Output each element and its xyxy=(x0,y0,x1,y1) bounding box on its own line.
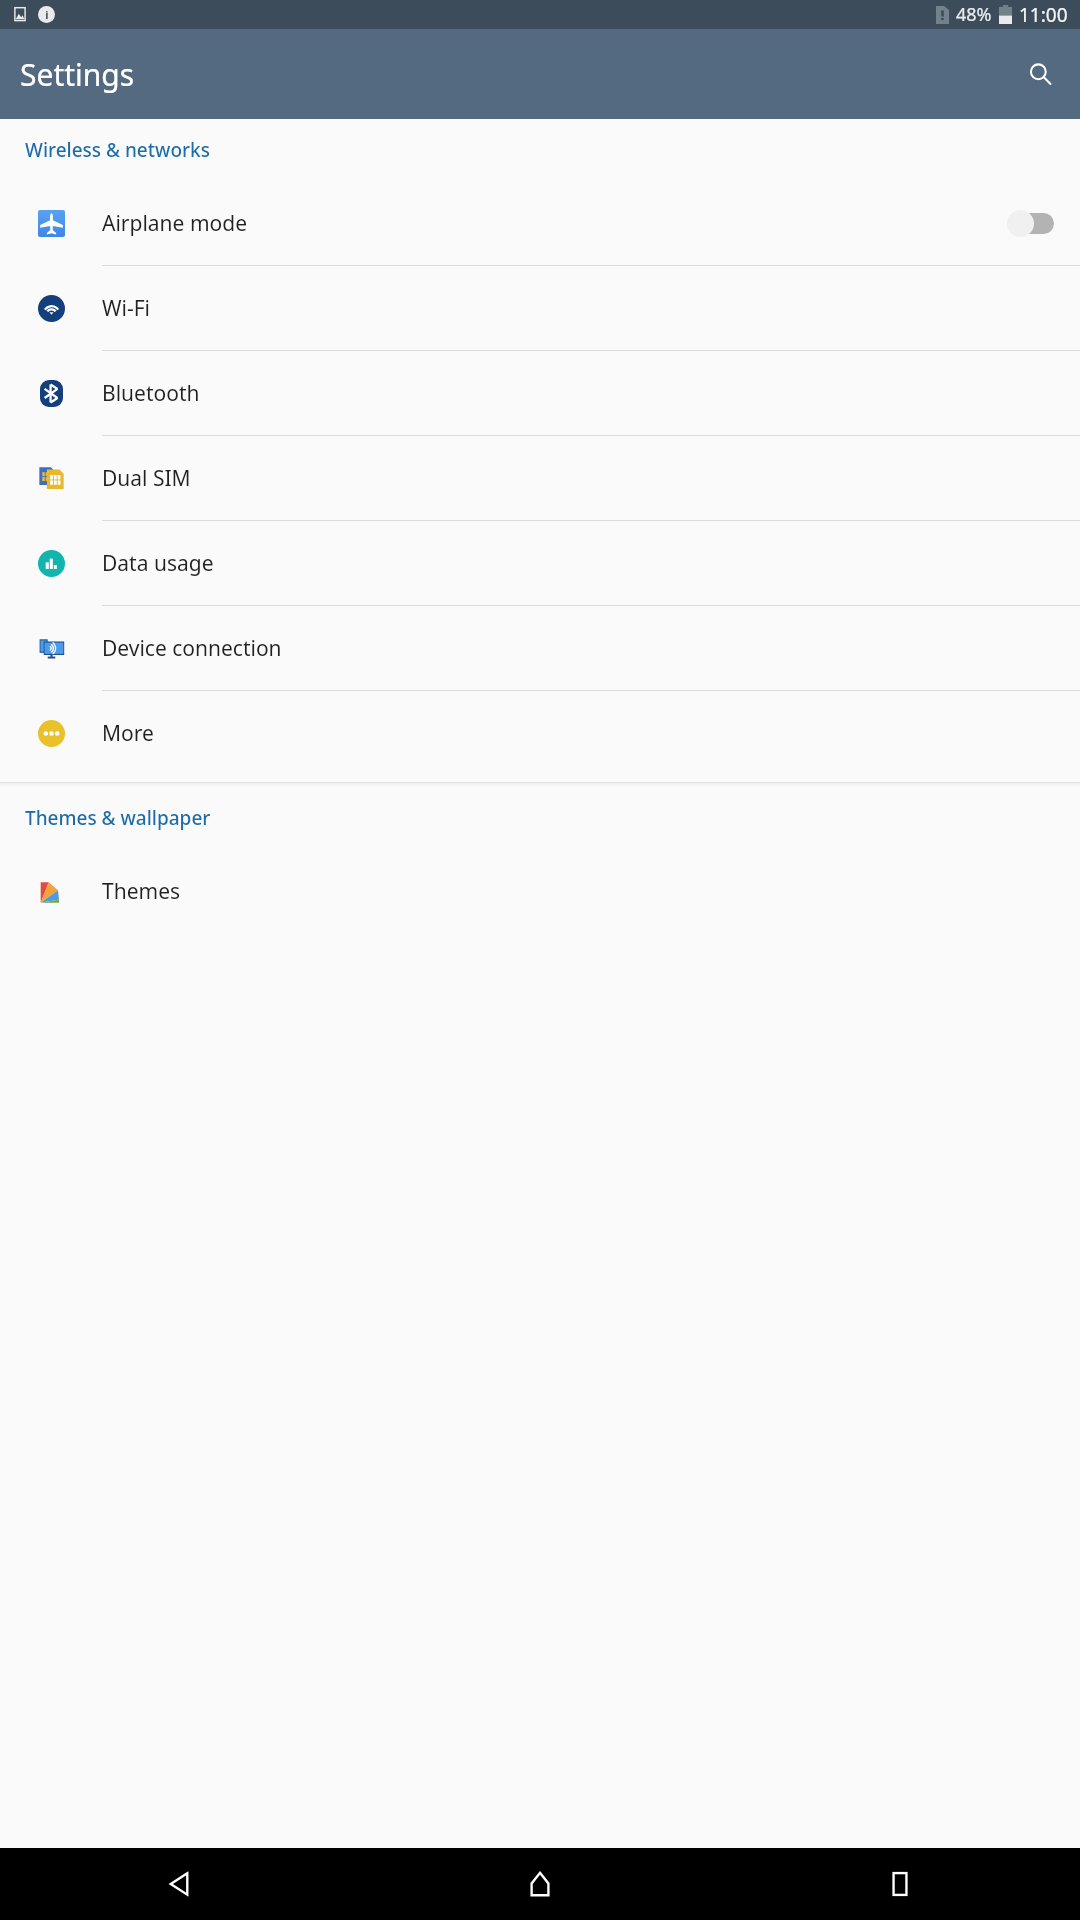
button[interactable]: Back xyxy=(0,1848,360,1920)
staticText: Wireless & networks xyxy=(25,137,210,163)
staticText: Wi-Fi xyxy=(102,294,1080,323)
staticText: Themes xyxy=(102,877,1080,906)
staticText: i xyxy=(45,7,49,22)
button[interactable]: Wi-Fi xyxy=(0,266,1080,351)
button[interactable]: Data usage xyxy=(0,521,1080,606)
staticText: Airplane mode xyxy=(102,209,1007,238)
staticText: Data usage xyxy=(102,549,1080,578)
button[interactable]: Themes xyxy=(0,849,1080,933)
staticText: 48% xyxy=(956,2,992,27)
button[interactable]: Bluetooth xyxy=(0,351,1080,436)
staticText: Device connection xyxy=(102,634,1080,663)
staticText: Bluetooth xyxy=(102,379,1080,408)
button[interactable]: Home xyxy=(360,1848,720,1920)
button[interactable]: More xyxy=(0,691,1080,775)
button[interactable]: Dual SIM xyxy=(0,436,1080,521)
staticText: Themes & wallpaper xyxy=(25,805,211,831)
button[interactable]: Recent apps xyxy=(720,1848,1080,1920)
staticText: Dual SIM xyxy=(102,464,1080,493)
button[interactable]: Airplane mode xyxy=(0,181,1080,266)
button[interactable]: Device connection xyxy=(0,606,1080,691)
staticText: More xyxy=(102,719,1080,748)
staticText: Settings xyxy=(20,54,135,95)
staticText: 11:00 xyxy=(1019,2,1068,28)
button[interactable]: Search xyxy=(1016,50,1064,98)
